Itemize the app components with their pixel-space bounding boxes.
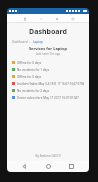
staticText: By Andrew G4019 [7, 154, 89, 158]
staticText: › [28, 40, 33, 44]
staticText: Last seen 7m ago [7, 52, 89, 56]
staticText: Incident/Index May 3 4:18 II 17 16:07:16… [17, 82, 85, 86]
button[interactable]: Settings [69, 15, 76, 22]
button[interactable]: Incident/Index May 3 4:18 II 17 16:07:16… [7, 80, 89, 87]
button[interactable]: No incidents for 2 days [7, 87, 89, 94]
button[interactable]: Person [21, 15, 28, 22]
button[interactable]: Home [43, 161, 54, 172]
staticText: Dashboard [7, 27, 89, 37]
staticText: No incidents for 1 days [17, 68, 50, 72]
button[interactable]: Home [53, 15, 60, 22]
staticText: Device subscriiere May 17 2017 16:07:010… [17, 96, 85, 100]
button[interactable]: Menu [37, 15, 44, 22]
staticText: Offline for 0 days [17, 61, 42, 65]
button[interactable]: Offline for 0 days [7, 59, 89, 66]
staticText: Offline for 0 days [17, 75, 42, 79]
button[interactable]: Back [19, 161, 30, 172]
button[interactable]: Recents [66, 161, 77, 172]
staticText: Services for Laptop [7, 46, 89, 51]
button[interactable]: Dashboard [12, 40, 28, 44]
button[interactable]: Offline for 0 days [7, 73, 89, 80]
button[interactable]: No incidents for 1 days [7, 66, 89, 73]
button[interactable]: Device subscriiere May 17 2017 16:07:010… [7, 94, 89, 101]
button[interactable]: Laptop [33, 40, 43, 44]
staticText: No incidents for 2 days [17, 89, 50, 93]
